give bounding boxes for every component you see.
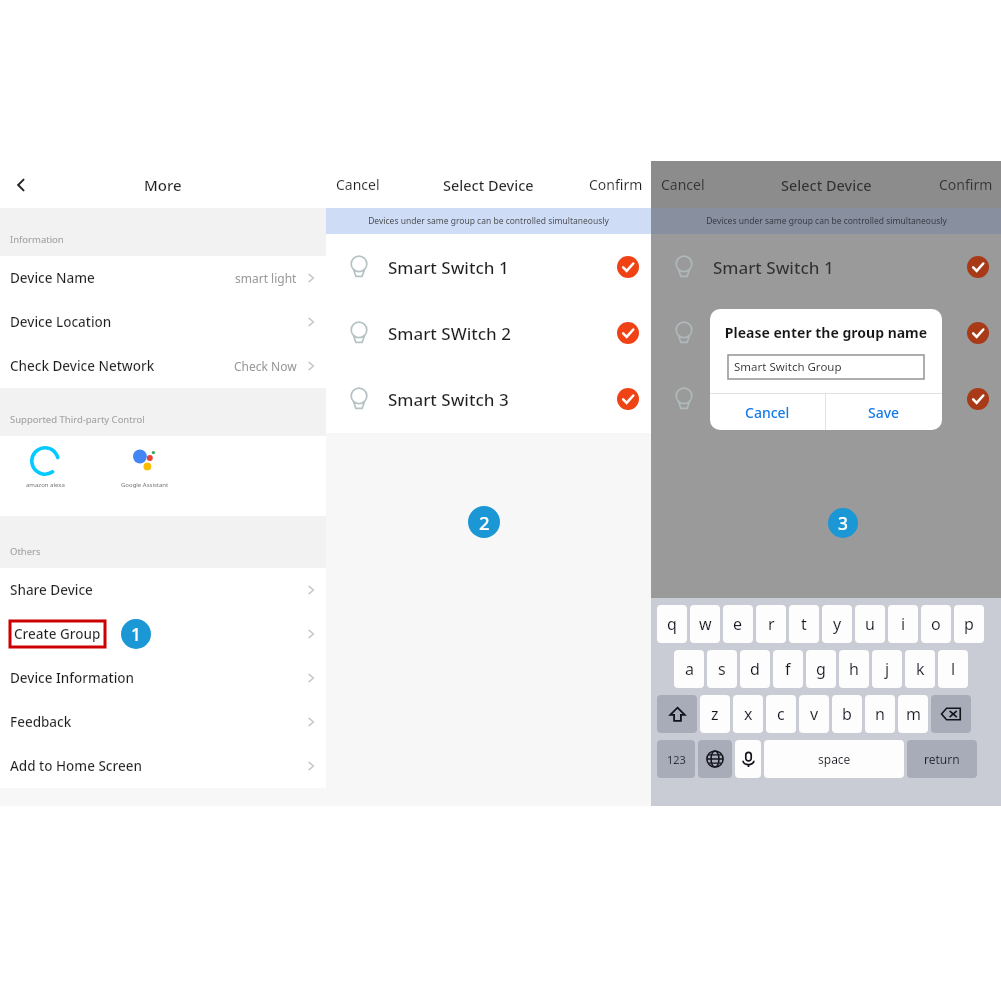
button[interactable]: Device Name — [0, 256, 326, 300]
button[interactable]: Back — [6, 170, 36, 200]
button[interactable]: Backspace — [931, 695, 971, 733]
button[interactable]: Cancel — [651, 169, 711, 200]
button[interactable]: Add to Home Screen — [0, 744, 326, 788]
staticText: Share Device — [10, 581, 93, 599]
staticText: Smart Switch 3 — [388, 388, 509, 411]
staticText: h — [849, 658, 859, 680]
staticText: Supported Third-party Control — [10, 413, 145, 426]
staticText: 123 — [667, 752, 686, 767]
staticText: w — [699, 613, 712, 635]
staticText: Device Name — [10, 269, 95, 287]
button[interactable]: p — [954, 605, 984, 643]
button[interactable]: k — [905, 650, 935, 688]
button[interactable]: Smart Switch 1 — [326, 234, 651, 300]
button[interactable]: d — [740, 650, 770, 688]
staticText: Create Group — [14, 625, 101, 643]
staticText: space — [818, 751, 851, 767]
button[interactable]: Cancel — [710, 394, 825, 430]
button[interactable]: a — [674, 650, 704, 688]
staticText: Cancel — [745, 403, 790, 422]
button[interactable]: x — [733, 695, 763, 733]
staticText: Device Information — [10, 669, 135, 687]
button[interactable]: v — [799, 695, 829, 733]
staticText: Smart Switch 1 — [713, 256, 834, 279]
button[interactable]: Smart Switch 1 — [651, 234, 1001, 300]
staticText: i — [901, 613, 906, 635]
button[interactable]: t — [789, 605, 819, 643]
button[interactable]: e — [723, 605, 753, 643]
button[interactable]: Confirm — [933, 169, 1001, 200]
button[interactable]: s — [707, 650, 737, 688]
button[interactable]: 123 — [657, 740, 695, 778]
staticText: 3 — [838, 511, 848, 535]
staticText: n — [875, 703, 885, 725]
staticText: Devices under same group can be controll… — [706, 215, 947, 227]
button[interactable]: Smart Switch Group — [728, 355, 924, 379]
staticText: c — [777, 703, 785, 725]
button[interactable]: return — [907, 740, 977, 778]
button[interactable]: z — [700, 695, 730, 733]
staticText: u — [865, 613, 875, 635]
staticText: Others — [10, 545, 41, 558]
button[interactable]: Create Group — [0, 612, 326, 656]
button[interactable]: Smart SWitch 2 — [651, 300, 1001, 366]
button[interactable]: Voice input — [735, 740, 761, 778]
staticText: Confirm — [589, 175, 643, 194]
staticText: return — [924, 751, 960, 767]
staticText: v — [810, 703, 819, 725]
staticText: Devices under same group can be controll… — [368, 215, 609, 227]
button[interactable]: n — [865, 695, 895, 733]
button[interactable]: l — [938, 650, 968, 688]
button[interactable]: Change keyboard language — [698, 740, 732, 778]
staticText: x — [744, 703, 753, 725]
staticText: Information — [10, 233, 64, 246]
staticText: Smart SWitch 2 — [388, 322, 511, 345]
button[interactable]: q — [657, 605, 687, 643]
button[interactable]: i — [888, 605, 918, 643]
staticText: Select Device — [781, 175, 872, 195]
staticText: a — [685, 658, 694, 680]
staticText: Google Assistant — [121, 481, 169, 489]
button[interactable]: Smart Switch 3 — [326, 366, 651, 432]
button[interactable]: w — [690, 605, 720, 643]
staticText: z — [711, 703, 719, 725]
button[interactable]: Device Location — [0, 300, 326, 344]
staticText: d — [750, 658, 760, 680]
button[interactable]: Device Information — [0, 656, 326, 700]
button[interactable]: space — [764, 740, 904, 778]
staticText: m — [906, 703, 921, 725]
button[interactable]: Cancel — [326, 169, 386, 200]
button[interactable]: Confirm — [583, 169, 651, 200]
button[interactable]: u — [855, 605, 885, 643]
button[interactable]: Share Device — [0, 568, 326, 612]
button[interactable]: y — [822, 605, 852, 643]
staticText: smart light — [235, 270, 297, 286]
button[interactable]: g — [806, 650, 836, 688]
button[interactable]: Shift — [657, 695, 697, 733]
button[interactable]: c — [766, 695, 796, 733]
staticText: s — [718, 658, 726, 680]
staticText: More — [144, 175, 182, 195]
staticText: b — [842, 703, 852, 725]
staticText: Smart Switch 3 — [713, 388, 834, 411]
button[interactable]: Save — [826, 394, 942, 430]
staticText: Feedback — [10, 713, 72, 731]
staticText: Cancel — [336, 175, 380, 194]
button[interactable]: Feedback — [0, 700, 326, 744]
staticText: r — [768, 613, 775, 635]
button[interactable]: m — [898, 695, 928, 733]
button[interactable]: f — [773, 650, 803, 688]
button[interactable]: o — [921, 605, 951, 643]
staticText: Device Location — [10, 313, 112, 331]
button[interactable]: r — [756, 605, 786, 643]
button[interactable]: h — [839, 650, 869, 688]
button[interactable]: b — [832, 695, 862, 733]
staticText: j — [885, 658, 890, 680]
staticText: o — [931, 613, 941, 635]
button[interactable]: j — [872, 650, 902, 688]
button[interactable]: Smart Switch 3 — [651, 366, 1001, 432]
button[interactable]: Check Device Network — [0, 344, 326, 388]
button[interactable]: Smart SWitch 2 — [326, 300, 651, 366]
staticText: p — [964, 613, 974, 635]
staticText: 1 — [131, 622, 141, 646]
